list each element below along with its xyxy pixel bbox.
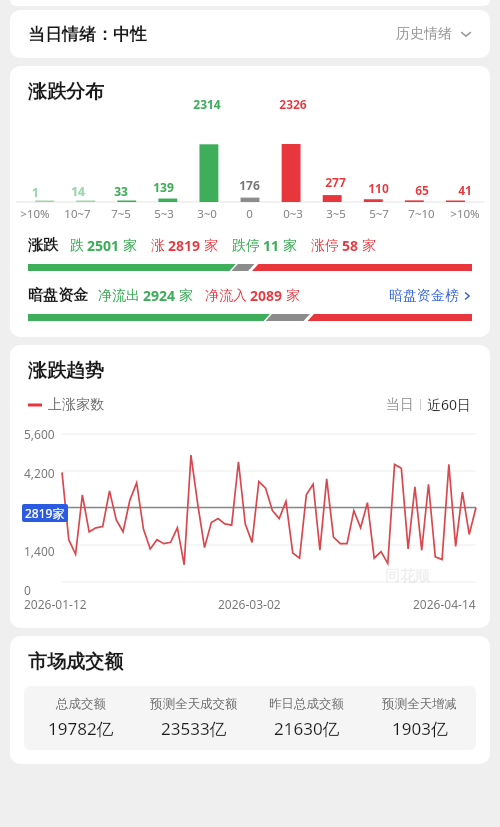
staticText: 0: [246, 206, 253, 222]
button[interactable]: 总成交额: [24, 696, 137, 740]
staticText: 昨日总成交额: [269, 696, 344, 712]
staticText: 家: [283, 237, 297, 255]
staticText: 23533亿: [161, 717, 227, 740]
staticText: 5,600: [24, 426, 55, 442]
staticText: 1: [32, 184, 39, 200]
staticText: 预测全天增减: [382, 696, 457, 712]
staticText: 1,400: [24, 543, 55, 559]
staticText: 涨跌: [28, 236, 58, 255]
staticText: 21630亿: [274, 717, 340, 740]
staticText: 家: [179, 287, 193, 305]
staticText: 近60日: [427, 395, 472, 414]
button[interactable]: 预测全天增减: [363, 696, 476, 740]
staticText: 2501: [87, 236, 120, 255]
staticText: 2,800: [24, 504, 55, 520]
staticText: 41: [458, 182, 472, 198]
staticText: 33: [114, 183, 128, 199]
button[interactable]: 当日情绪：中性: [10, 10, 490, 58]
staticText: 涨: [151, 237, 165, 255]
staticText: 58: [342, 236, 359, 255]
staticText: 3~5: [326, 206, 346, 222]
staticText: 14: [71, 183, 85, 199]
staticText: 277: [325, 174, 346, 190]
staticText: 7~10: [408, 206, 435, 222]
staticText: 5~3: [154, 206, 174, 222]
staticText: 家: [204, 237, 218, 255]
staticText: 0~3: [283, 206, 303, 222]
staticText: 同花顺: [385, 567, 430, 586]
staticText: 110: [368, 180, 389, 196]
staticText: 上涨家数: [48, 396, 104, 414]
staticText: 65: [415, 182, 429, 198]
staticText: 5~7: [369, 206, 389, 222]
staticText: 净流入: [205, 287, 247, 305]
staticText: 涨停: [311, 237, 339, 255]
staticText: 跌停: [232, 237, 260, 255]
staticText: 2819家: [25, 505, 65, 521]
button[interactable]: 暗盘资金榜: [389, 287, 472, 305]
staticText: 11: [263, 236, 280, 255]
staticText: 2924: [143, 286, 176, 305]
staticText: 139: [153, 179, 174, 195]
button[interactable]: 涨跌: [28, 236, 472, 255]
staticText: >10%: [20, 206, 50, 222]
staticText: 跌: [70, 237, 84, 255]
staticText: 2819: [168, 236, 201, 255]
staticText: 2326: [279, 96, 307, 112]
staticText: 7~5: [111, 206, 131, 222]
button[interactable]: 预测全天成交额: [137, 696, 250, 740]
staticText: 当日情绪：中性: [28, 24, 147, 45]
staticText: 当日: [386, 396, 414, 414]
staticText: 家: [362, 237, 376, 255]
staticText: 暗盘资金: [28, 286, 88, 305]
staticText: 市场成交额: [28, 650, 123, 674]
staticText: 0: [24, 582, 31, 598]
button[interactable]: 当日: [386, 396, 414, 414]
staticText: 家: [123, 237, 137, 255]
button[interactable]: 昨日总成交额: [250, 696, 363, 740]
staticText: 净流出: [98, 287, 140, 305]
staticText: 2026-01-12: [24, 596, 87, 612]
staticText: 涨跌分布: [28, 80, 104, 104]
staticText: 涨跌趋势: [28, 359, 104, 383]
staticText: 10~7: [64, 206, 91, 222]
staticText: 2026-04-14: [413, 596, 476, 612]
staticText: 1903亿: [392, 717, 448, 740]
staticText: 2314: [193, 96, 221, 112]
staticText: 家: [286, 287, 300, 305]
staticText: 历史情绪: [396, 25, 452, 43]
staticText: 总成交额: [56, 696, 106, 712]
staticText: >10%: [450, 206, 480, 222]
staticText: 暗盘资金榜: [389, 287, 459, 305]
staticText: 4,200: [24, 465, 55, 481]
staticText: 176: [239, 177, 260, 193]
staticText: 19782亿: [48, 717, 114, 740]
staticText: 2026-03-02: [218, 596, 281, 612]
staticText: 2089: [250, 286, 283, 305]
staticText: 3~0: [197, 206, 217, 222]
button[interactable]: 近60日: [427, 395, 472, 414]
staticText: 预测全天成交额: [150, 696, 238, 712]
